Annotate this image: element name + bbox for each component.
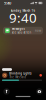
staticText: Blinding Lights	[9, 72, 31, 75]
staticText: 9:40	[9, 9, 37, 26]
button[interactable]: Blinding Lights	[2, 72, 42, 78]
button[interactable]: Messages	[3, 27, 43, 34]
button[interactable]: Flashlight	[2, 87, 11, 96]
button[interactable]: Camera	[35, 87, 44, 96]
staticText: Messages	[11, 27, 24, 30]
staticText: See you at ten	[11, 31, 31, 34]
staticText: The Weeknd	[9, 75, 26, 79]
staticText: 9:40	[4, 0, 11, 6]
staticText: Sunday, March 16	[10, 9, 35, 12]
staticText: now	[35, 29, 41, 32]
